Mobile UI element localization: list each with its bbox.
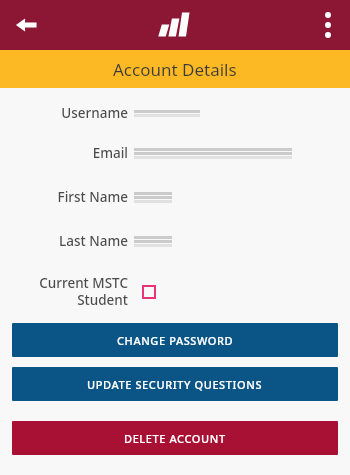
button[interactable]: More options bbox=[310, 7, 346, 43]
staticText: First Name bbox=[57, 188, 128, 206]
staticText: Email bbox=[92, 144, 128, 162]
staticText: Account Details bbox=[113, 58, 237, 81]
button[interactable]: UPDATE SECURITY QUESTIONS bbox=[12, 367, 338, 401]
button[interactable]: Current MSTC Student checkbox bbox=[136, 279, 162, 305]
staticText: CHANGE PASSWORD bbox=[117, 333, 234, 348]
button[interactable]: DELETE ACCOUNT bbox=[12, 421, 338, 455]
staticText: Username bbox=[61, 104, 128, 122]
button[interactable]: Back bbox=[8, 7, 44, 43]
staticText: DELETE ACCOUNT bbox=[124, 431, 226, 446]
staticText: Last Name bbox=[59, 232, 128, 250]
staticText: Current MSTC Student bbox=[39, 274, 128, 309]
staticText: UPDATE SECURITY QUESTIONS bbox=[87, 377, 263, 392]
button[interactable]: CHANGE PASSWORD bbox=[12, 323, 338, 357]
